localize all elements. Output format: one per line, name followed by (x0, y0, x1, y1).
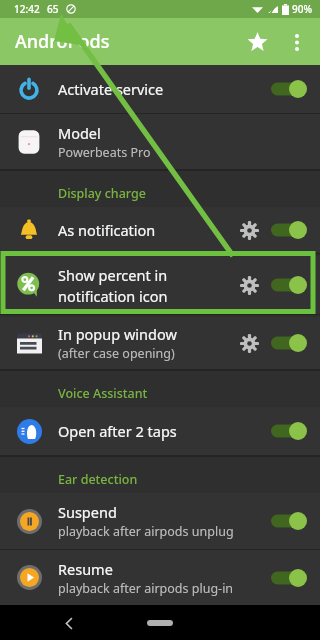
button[interactable]: Toggle Show percent in (268, 268, 310, 302)
staticText: AndroPods (15, 29, 110, 54)
button[interactable]: In popup window (0, 317, 320, 369)
button[interactable]: Favorite (240, 25, 274, 59)
button[interactable]: Toggle As notification (268, 213, 310, 247)
staticText: Suspend (58, 502, 117, 522)
staticText: 65 (47, 2, 59, 16)
button[interactable]: More options (280, 25, 314, 59)
button[interactable]: Toggle Activate service (268, 72, 310, 106)
staticText: Voice Assistant (58, 385, 148, 402)
button[interactable]: Show percent in (0, 256, 320, 314)
staticText: playback after airpods unplug (58, 523, 234, 540)
staticText: Powerbeats Pro (58, 144, 151, 161)
staticText: Display charge (58, 185, 146, 202)
staticText: (after case opening) (58, 345, 175, 362)
button[interactable]: Resume (0, 550, 320, 605)
button[interactable]: Open after 2 taps (0, 407, 320, 455)
button[interactable]: Home (132, 611, 188, 635)
staticText: 90% (292, 2, 312, 16)
button[interactable]: Settings (230, 211, 268, 249)
button[interactable]: Toggle In popup window (268, 326, 310, 360)
staticText: Model (58, 123, 101, 143)
button[interactable]: Toggle Open after 2 taps (268, 414, 310, 448)
staticText: playback after airpods plug-in (58, 580, 234, 597)
button[interactable]: Toggle Suspend (268, 504, 310, 538)
staticText: As notification (58, 220, 156, 240)
button[interactable]: As notification (0, 207, 320, 253)
staticText: notification icon (58, 286, 168, 306)
button[interactable]: Settings (230, 324, 268, 362)
button[interactable]: Settings (230, 266, 268, 304)
staticText: Ear detection (58, 471, 138, 488)
button[interactable]: Toggle Resume (268, 561, 310, 595)
staticText: In popup window (58, 324, 177, 344)
button[interactable]: Suspend (0, 493, 320, 549)
staticText: Show percent in (58, 265, 168, 285)
staticText: Activate service (58, 79, 164, 99)
staticText: Open after 2 taps (58, 421, 177, 441)
staticText: 12:42 (14, 2, 40, 16)
button[interactable]: Model (0, 114, 320, 169)
button[interactable]: Back (54, 608, 84, 638)
staticText: Resume (58, 559, 113, 579)
button[interactable]: Activate service (0, 65, 320, 113)
